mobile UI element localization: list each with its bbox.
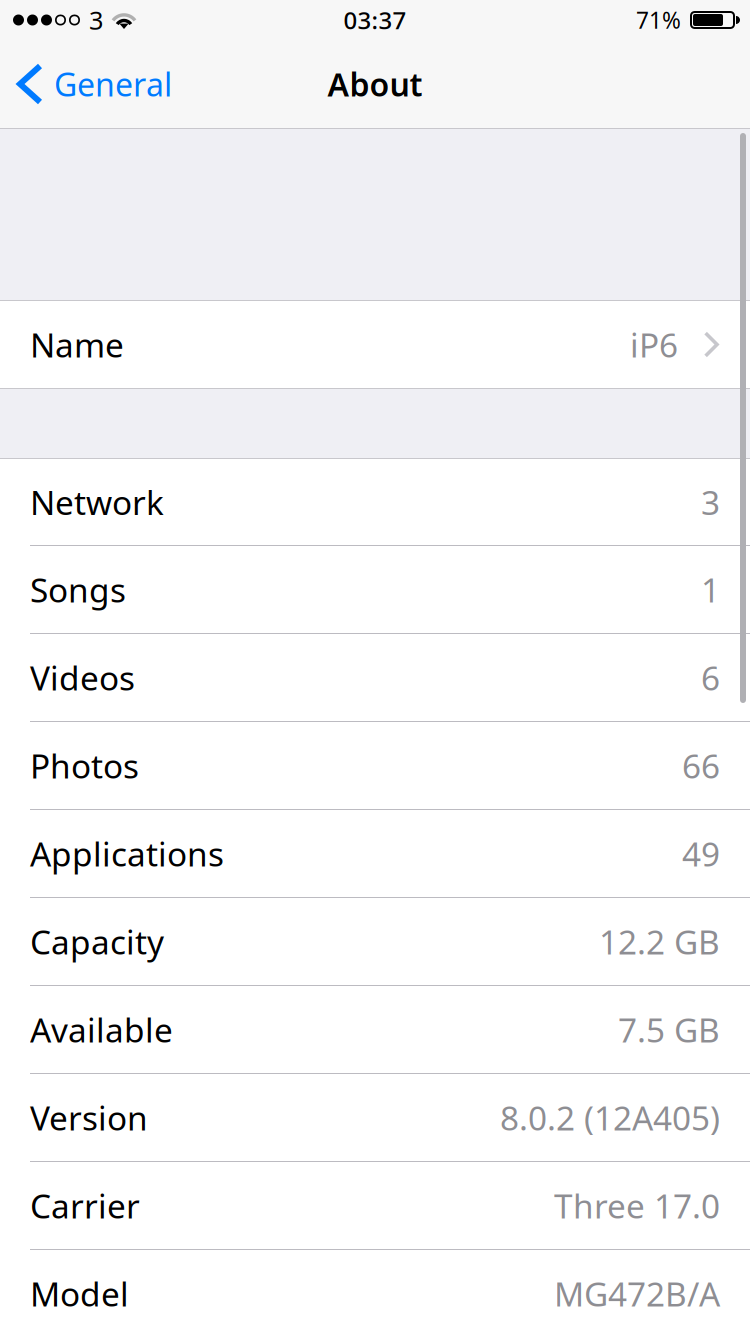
button[interactable]: Carrier (0, 1162, 750, 1249)
staticText: 3 (89, 3, 103, 37)
staticText: iP6 (630, 322, 678, 367)
staticText: Videos (30, 655, 135, 700)
staticText: About (327, 62, 422, 106)
staticText: General (54, 62, 172, 106)
button[interactable]: Applications (0, 810, 750, 897)
staticText: 66 (682, 743, 720, 788)
staticText: Network (30, 479, 164, 525)
staticText: Photos (30, 743, 139, 788)
staticText: Carrier (30, 1183, 140, 1228)
staticText: Applications (30, 831, 224, 876)
staticText: 49 (682, 831, 720, 876)
staticText: 3 (701, 479, 720, 525)
button[interactable]: Songs (0, 546, 750, 633)
staticText: Model (30, 1271, 129, 1316)
staticText: Songs (30, 567, 126, 612)
button[interactable]: Back to General (0, 40, 183, 128)
staticText: 71% (636, 5, 681, 35)
staticText: Version (30, 1095, 148, 1140)
staticText: 12.2 GB (599, 919, 720, 964)
staticText: 03:37 (343, 4, 406, 36)
staticText: Three 17.0 (554, 1183, 720, 1228)
staticText: MG472B/A (554, 1271, 720, 1316)
staticText: 7.5 GB (618, 1007, 720, 1052)
button[interactable]: Available (0, 986, 750, 1073)
staticText: 1 (701, 567, 720, 612)
button[interactable]: Videos (0, 634, 750, 721)
button[interactable]: Version (0, 1074, 750, 1161)
button[interactable]: Network (0, 459, 750, 545)
staticText: Capacity (30, 919, 164, 964)
staticText: 8.0.2 (12A405) (500, 1095, 720, 1140)
staticText: Name (30, 322, 124, 367)
button[interactable]: Model (0, 1250, 750, 1334)
button[interactable]: Capacity (0, 898, 750, 985)
button[interactable]: Photos (0, 722, 750, 809)
button[interactable]: Name (0, 301, 750, 388)
staticText: 6 (701, 655, 720, 700)
staticText: Available (30, 1007, 173, 1052)
